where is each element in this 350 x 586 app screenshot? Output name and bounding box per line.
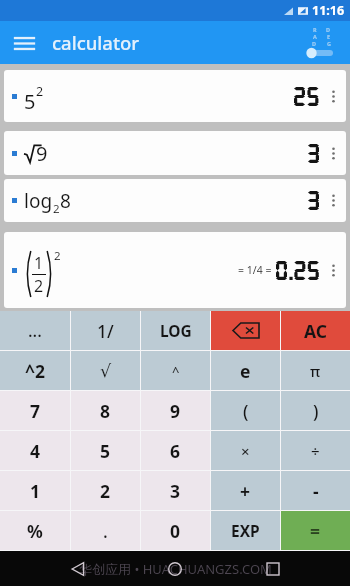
staticText: ... xyxy=(28,319,42,342)
other: More options xyxy=(327,192,340,209)
staticText: ) xyxy=(313,399,319,423)
staticText: 华创应用 • HUACHUANGZS.COM xyxy=(79,560,272,578)
button[interactable]: ... xyxy=(0,311,70,350)
button[interactable]: + xyxy=(211,471,280,510)
button[interactable]: 5 xyxy=(71,431,140,470)
other: More options xyxy=(327,88,340,105)
button[interactable]: % xyxy=(0,511,70,550)
staticText: 2 xyxy=(34,275,44,297)
button[interactable]: LOG xyxy=(141,311,210,350)
button[interactable]: 2 xyxy=(71,471,140,510)
button[interactable]: Back xyxy=(58,551,98,586)
staticText: G xyxy=(327,40,331,47)
button[interactable]: ÷ xyxy=(281,431,350,470)
button[interactable]: EXP xyxy=(211,511,280,550)
button[interactable]: 1 xyxy=(0,471,70,510)
staticText: = xyxy=(310,519,321,543)
staticText: E xyxy=(327,33,331,40)
button[interactable]: 9 xyxy=(141,391,210,430)
button[interactable]: = xyxy=(281,511,350,550)
staticText: 2 xyxy=(54,248,61,264)
button[interactable]: √ xyxy=(71,351,140,390)
staticText: D xyxy=(326,26,331,33)
staticText: A xyxy=(313,33,317,40)
button[interactable]: Open navigation menu xyxy=(7,26,41,60)
button[interactable]: ^2 xyxy=(0,351,70,390)
button[interactable]: 3 xyxy=(141,471,210,510)
staticText: ÷ xyxy=(311,441,320,461)
other: More options xyxy=(327,262,340,279)
button[interactable]: Backspace xyxy=(211,311,280,350)
staticText: √ xyxy=(100,361,112,381)
button[interactable]: × xyxy=(211,431,280,470)
staticText: 5 xyxy=(24,88,36,115)
staticText: calculator xyxy=(52,30,140,55)
staticText: ^2 xyxy=(25,359,46,383)
button[interactable]: 4 xyxy=(0,431,70,470)
staticText: × xyxy=(241,441,250,461)
button[interactable]: 6 xyxy=(141,431,210,470)
staticText: 11:16 xyxy=(312,2,345,19)
staticText: = 1/4 = xyxy=(238,263,272,277)
staticText: . xyxy=(103,519,108,543)
staticText: ^ xyxy=(172,362,180,380)
button[interactable]: 8 xyxy=(71,391,140,430)
staticText: R xyxy=(313,26,317,33)
button[interactable]: . xyxy=(71,511,140,550)
button[interactable]: Home xyxy=(155,551,195,586)
button[interactable]: π xyxy=(281,351,350,390)
staticText: 1 xyxy=(30,479,41,503)
staticText: - xyxy=(313,479,319,503)
button[interactable]: 1 xyxy=(4,232,346,308)
staticText: 4 xyxy=(30,439,41,463)
button[interactable]: ( xyxy=(211,391,280,430)
button[interactable]: ) xyxy=(281,391,350,430)
staticText: EXP xyxy=(231,520,260,541)
staticText: 7 xyxy=(30,399,41,423)
staticText: 2 xyxy=(53,201,60,217)
staticText: 3 xyxy=(170,479,181,503)
staticText: π xyxy=(310,361,321,381)
button[interactable]: 9 xyxy=(4,131,346,175)
button[interactable]: 5 xyxy=(4,70,346,122)
staticText: + xyxy=(240,479,251,503)
staticText: 1 xyxy=(34,252,44,274)
button[interactable]: 0 xyxy=(141,511,210,550)
staticText: 0 xyxy=(170,519,181,543)
button[interactable]: - xyxy=(281,471,350,510)
button[interactable]: ^ xyxy=(141,351,210,390)
staticText: 5 xyxy=(100,439,111,463)
staticText: 9 xyxy=(36,140,48,167)
button[interactable]: 7 xyxy=(0,391,70,430)
button[interactable]: log xyxy=(4,179,346,222)
staticText: 9 xyxy=(170,399,181,423)
button[interactable]: e xyxy=(211,351,280,390)
staticText: 1/ xyxy=(97,319,114,343)
other: More options xyxy=(327,145,340,162)
staticText: 2 xyxy=(36,83,44,100)
staticText: log xyxy=(24,188,53,214)
staticText: LOG xyxy=(160,320,192,341)
button[interactable]: 1/ xyxy=(71,311,140,350)
staticText: ( xyxy=(243,399,249,423)
staticText: AC xyxy=(304,319,327,343)
button[interactable]: Recent apps xyxy=(253,551,293,586)
staticText: e xyxy=(240,359,251,383)
button[interactable]: AC xyxy=(281,311,350,350)
button[interactable]: Toggle radians or degrees xyxy=(299,22,343,63)
staticText: 8 xyxy=(60,188,71,214)
staticText: 8 xyxy=(100,399,111,423)
staticText: 2 xyxy=(100,479,111,503)
staticText: % xyxy=(27,519,43,543)
staticText: D xyxy=(312,40,317,47)
staticText: 6 xyxy=(170,439,181,463)
